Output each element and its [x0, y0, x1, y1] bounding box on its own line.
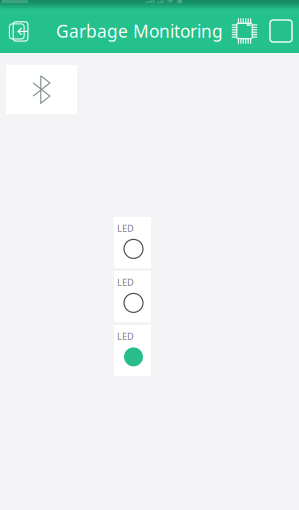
staticText: Garbage Monitoring: [56, 19, 223, 42]
button[interactable]: Stop: [264, 9, 299, 53]
staticText: LED: [117, 330, 134, 342]
button[interactable]: LED off: [114, 217, 151, 268]
button[interactable]: Device: [226, 9, 264, 53]
staticText: LED: [117, 222, 134, 234]
button[interactable]: Log out: [0, 9, 39, 53]
button[interactable]: Connect Bluetooth: [6, 65, 77, 114]
button[interactable]: LED off: [114, 271, 151, 322]
button[interactable]: LED on: [114, 325, 151, 376]
staticText: LED: [117, 276, 134, 288]
